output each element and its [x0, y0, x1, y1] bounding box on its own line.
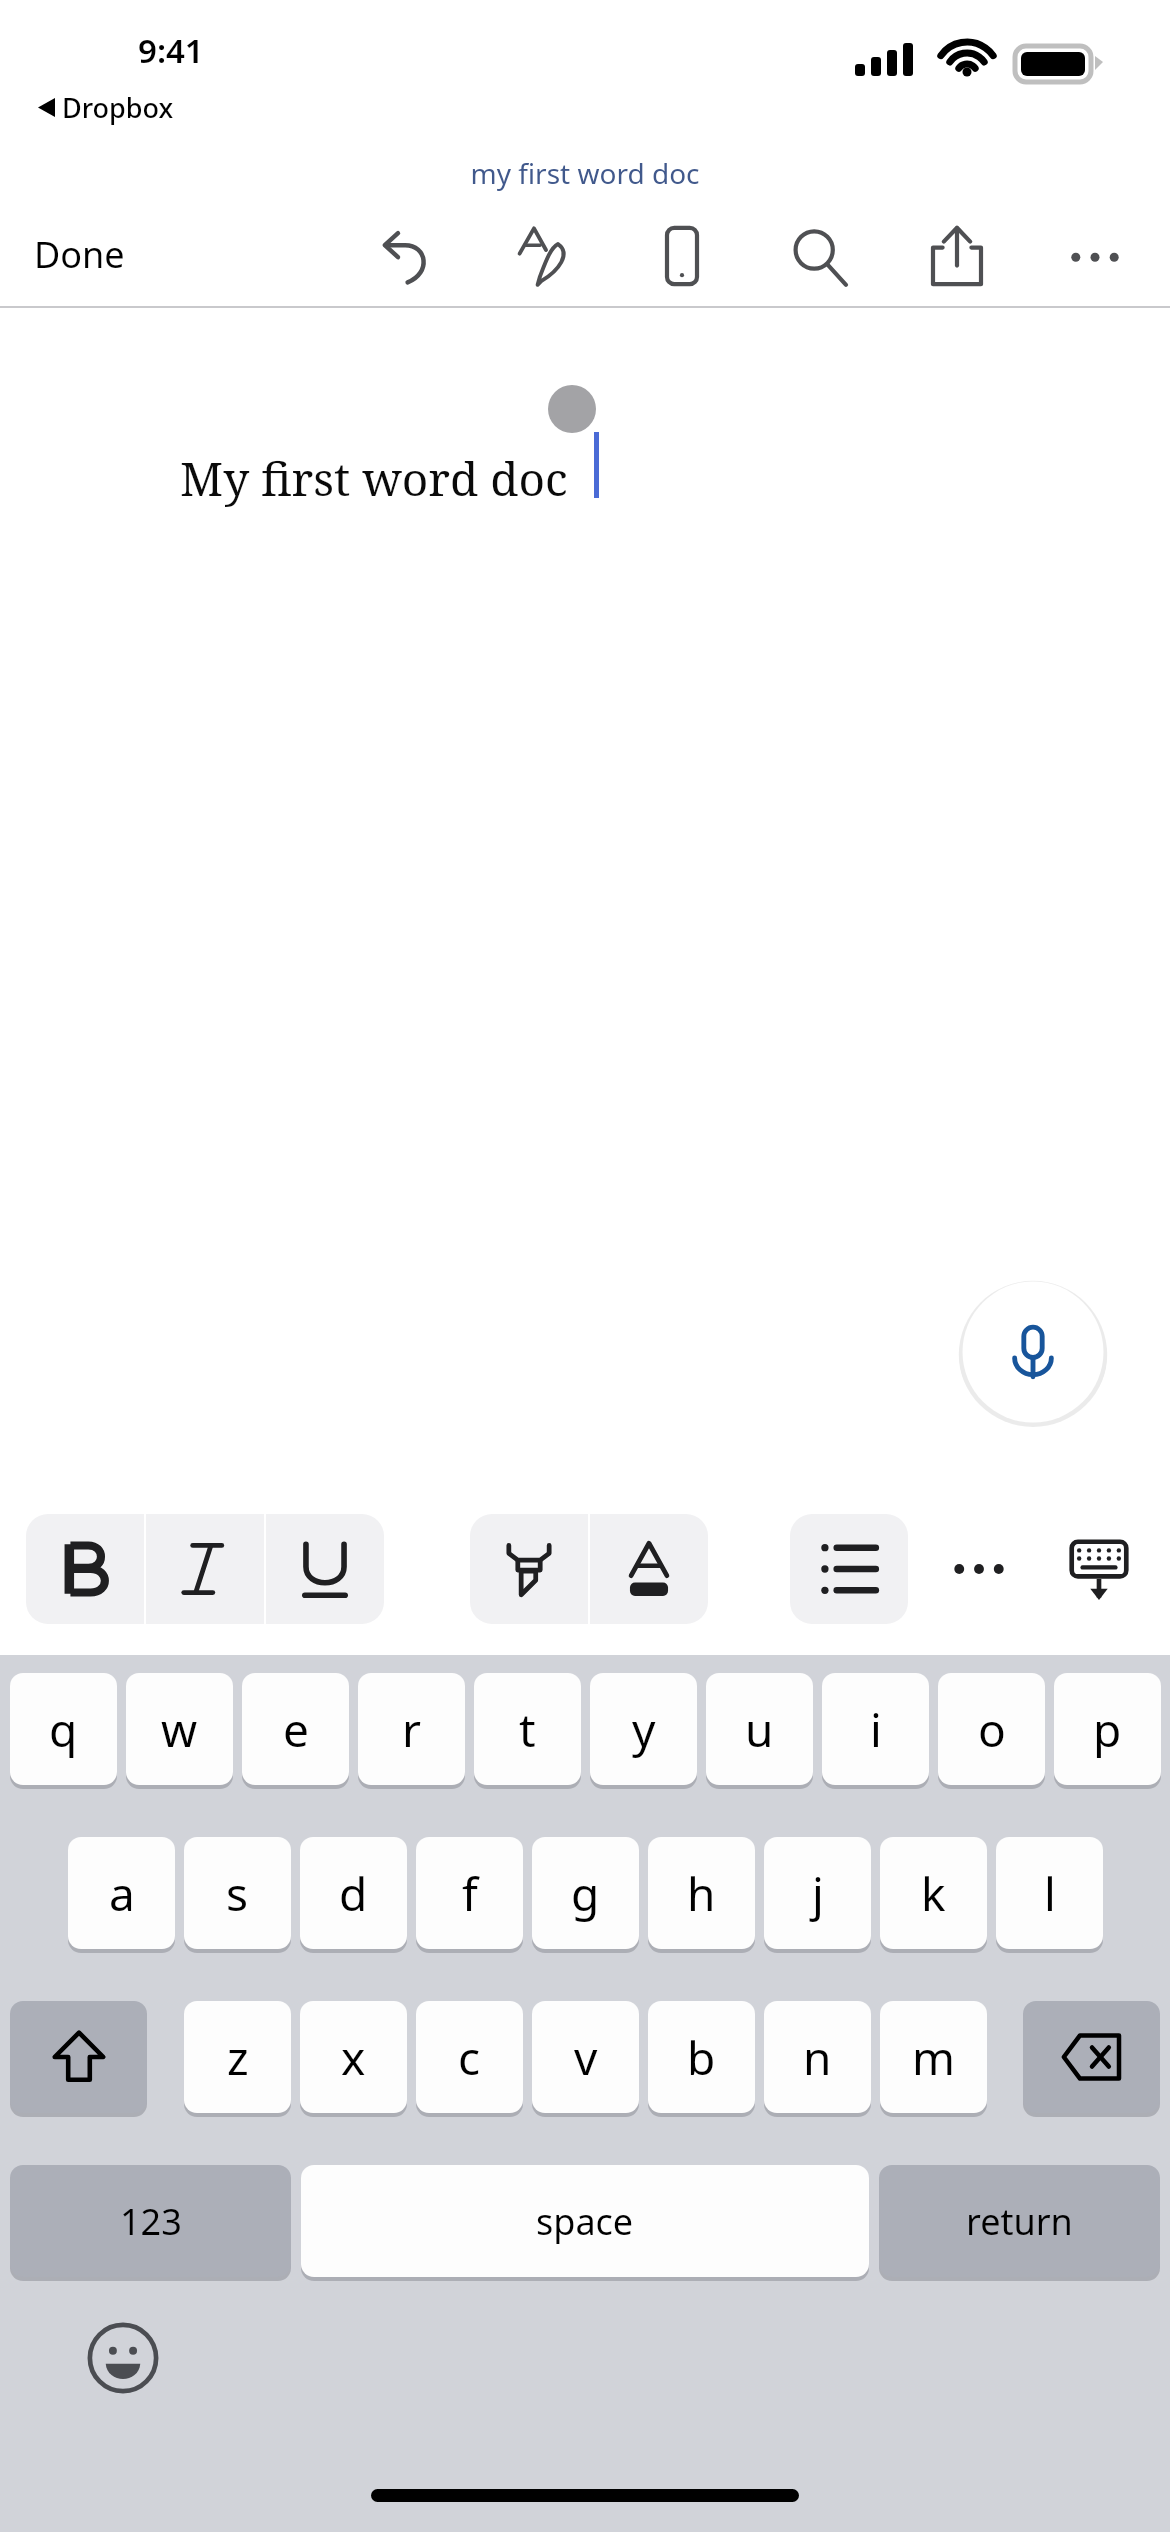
- button[interactable]: Hide keyboard: [1044, 1514, 1154, 1624]
- button[interactable]: s: [184, 1837, 291, 1949]
- staticText: space: [536, 2197, 634, 2246]
- staticText: x: [341, 2026, 366, 2089]
- button[interactable]: v: [532, 2001, 639, 2113]
- button[interactable]: Bold: [26, 1514, 144, 1624]
- staticText: f: [462, 1862, 478, 1925]
- staticText: s: [226, 1862, 249, 1925]
- staticText: q: [49, 1698, 78, 1761]
- button[interactable]: Underline: [266, 1514, 384, 1624]
- button[interactable]: Undo: [358, 204, 462, 308]
- staticText: i: [870, 1698, 882, 1761]
- button[interactable]: f: [416, 1837, 523, 1949]
- button[interactable]: t: [474, 1673, 581, 1785]
- staticText: d: [339, 1862, 368, 1925]
- button[interactable]: k: [880, 1837, 987, 1949]
- button[interactable]: Dropbox: [34, 85, 178, 130]
- button[interactable]: Draw: [494, 204, 598, 308]
- button[interactable]: Done: [0, 216, 159, 293]
- button[interactable]: Italic: [146, 1514, 264, 1624]
- button[interactable]: Shift: [10, 2001, 147, 2113]
- staticText: l: [1044, 1862, 1056, 1925]
- button[interactable]: r: [358, 1673, 465, 1785]
- staticText: v: [574, 2026, 598, 2089]
- staticText: return: [966, 2197, 1073, 2246]
- staticText: t: [519, 1698, 536, 1761]
- button[interactable]: Highlight: [470, 1514, 588, 1624]
- button[interactable]: Bulleted list: [790, 1514, 908, 1624]
- staticText: u: [745, 1698, 774, 1761]
- staticText: Done: [34, 230, 125, 279]
- staticText: n: [803, 2026, 832, 2089]
- button[interactable]: c: [416, 2001, 523, 2113]
- button[interactable]: z: [184, 2001, 291, 2113]
- button[interactable]: y: [590, 1673, 697, 1785]
- button[interactable]: o: [938, 1673, 1045, 1785]
- staticText: k: [921, 1862, 946, 1925]
- staticText: o: [978, 1698, 1006, 1761]
- button[interactable]: n: [764, 2001, 871, 2113]
- button[interactable]: w: [126, 1673, 233, 1785]
- button[interactable]: Numbers: [10, 2165, 291, 2277]
- staticText: a: [109, 1862, 135, 1925]
- button[interactable]: j: [764, 1837, 871, 1949]
- staticText: b: [687, 2026, 716, 2089]
- staticText: w: [161, 1698, 198, 1761]
- button[interactable]: e: [242, 1673, 349, 1785]
- button[interactable]: i: [822, 1673, 929, 1785]
- button[interactable]: Return: [879, 2165, 1160, 2277]
- button[interactable]: More options: [1043, 204, 1147, 308]
- button[interactable]: d: [300, 1837, 407, 1949]
- staticText: 123: [120, 2197, 182, 2246]
- button[interactable]: Backspace: [1023, 2001, 1160, 2113]
- button[interactable]: b: [648, 2001, 755, 2113]
- staticText: e: [283, 1698, 309, 1761]
- staticText: z: [227, 2026, 249, 2089]
- button[interactable]: u: [706, 1673, 813, 1785]
- button[interactable]: Search: [767, 204, 871, 308]
- button[interactable]: q: [10, 1673, 117, 1785]
- button[interactable]: x: [300, 2001, 407, 2113]
- staticText: r: [402, 1698, 421, 1761]
- staticText: m: [912, 2026, 956, 2089]
- staticText: g: [571, 1862, 600, 1925]
- button[interactable]: h: [648, 1837, 755, 1949]
- button[interactable]: Mobile view: [630, 204, 734, 308]
- staticText: Dropbox: [62, 89, 174, 126]
- button[interactable]: Dictate: [958, 1277, 1108, 1427]
- button[interactable]: my first word doc: [464, 148, 706, 198]
- staticText: j: [812, 1862, 824, 1925]
- staticText: 9:41: [138, 28, 204, 73]
- staticText: y: [632, 1698, 656, 1761]
- button[interactable]: l: [996, 1837, 1103, 1949]
- staticText: c: [458, 2026, 481, 2089]
- button[interactable]: p: [1054, 1673, 1161, 1785]
- button[interactable]: Emoji: [78, 2313, 168, 2403]
- staticText: My first word doc: [180, 447, 568, 510]
- staticText: p: [1093, 1698, 1122, 1761]
- button[interactable]: Space: [301, 2165, 869, 2277]
- button[interactable]: a: [68, 1837, 175, 1949]
- button[interactable]: m: [880, 2001, 987, 2113]
- button[interactable]: Font color: [590, 1514, 708, 1624]
- button[interactable]: Share: [905, 204, 1009, 308]
- button[interactable]: More formatting: [920, 1514, 1038, 1624]
- button[interactable]: g: [532, 1837, 639, 1949]
- staticText: h: [687, 1862, 716, 1925]
